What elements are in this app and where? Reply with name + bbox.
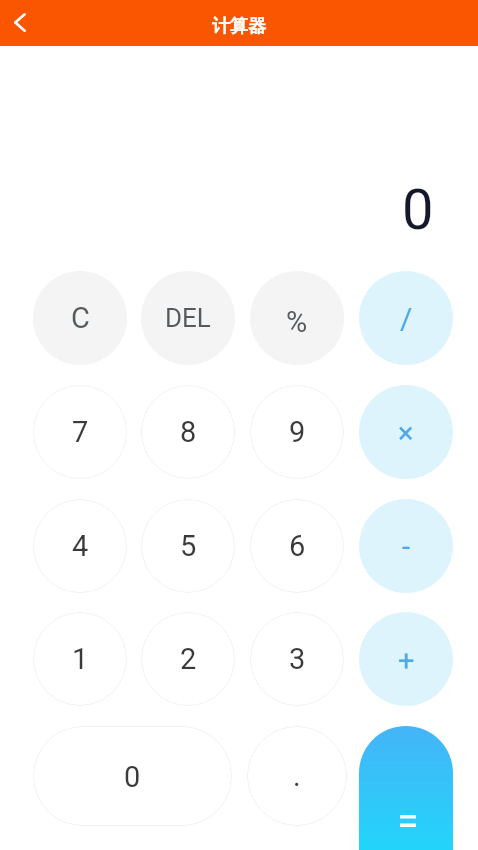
staticText: 0 <box>402 177 434 243</box>
staticText: × <box>398 416 414 450</box>
button[interactable]: / <box>359 271 453 365</box>
staticText: DEL <box>165 303 211 333</box>
staticText: % <box>286 305 308 339</box>
button[interactable]: 3 <box>250 612 344 706</box>
button[interactable]: 5 <box>141 499 235 593</box>
staticText: 9 <box>289 415 306 449</box>
staticText: C <box>71 301 90 335</box>
staticText: 4 <box>72 529 89 563</box>
button[interactable]: 2 <box>141 612 235 706</box>
staticText: 1 <box>72 642 89 676</box>
button[interactable]: C <box>33 271 127 365</box>
staticText: 2 <box>180 642 197 676</box>
button[interactable]: 9 <box>250 385 344 479</box>
button[interactable]: + <box>359 612 453 706</box>
staticText: + <box>398 644 415 678</box>
button[interactable]: . <box>247 726 347 826</box>
staticText: 6 <box>289 529 306 563</box>
button[interactable]: 7 <box>33 385 127 479</box>
staticText: 计算器 <box>212 15 266 38</box>
staticText: 3 <box>289 642 306 676</box>
staticText: 7 <box>72 415 89 449</box>
button[interactable]: 0 <box>33 726 232 826</box>
button[interactable]: % <box>250 271 344 365</box>
button[interactable]: DEL <box>141 271 235 365</box>
staticText: 8 <box>180 415 197 449</box>
staticText: - <box>402 530 411 564</box>
staticText: / <box>400 301 413 336</box>
button[interactable]: Equals <box>359 726 453 850</box>
staticText: 0 <box>124 760 141 794</box>
button[interactable]: Back <box>0 0 42 46</box>
button[interactable]: × <box>359 385 453 479</box>
button[interactable]: 1 <box>33 612 127 706</box>
staticText: 5 <box>180 529 197 563</box>
button[interactable]: 6 <box>250 499 344 593</box>
button[interactable]: 4 <box>33 499 127 593</box>
button[interactable]: - <box>359 499 453 593</box>
staticText: . <box>293 759 301 793</box>
button[interactable]: 8 <box>141 385 235 479</box>
